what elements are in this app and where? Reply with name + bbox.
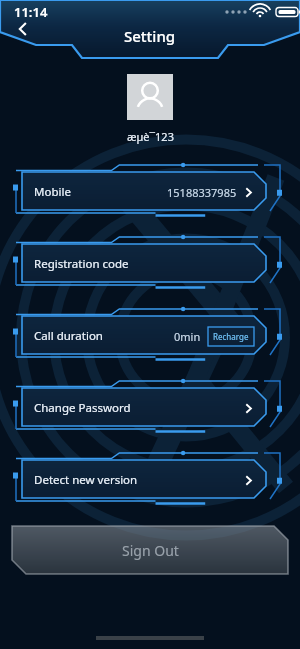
staticText: 0min xyxy=(174,329,201,344)
staticText: Change Password xyxy=(34,400,131,416)
staticText: Registration code xyxy=(34,256,129,272)
staticText: Mobile xyxy=(34,184,71,200)
button[interactable]: Registration code xyxy=(12,236,288,292)
staticText: Call duration xyxy=(34,328,103,344)
other: Open xyxy=(243,403,254,414)
other: Open xyxy=(243,475,254,486)
staticText: Sign Out xyxy=(122,541,179,560)
other: Open xyxy=(243,187,254,198)
button[interactable]: Mobile xyxy=(12,164,288,220)
staticText: Setting xyxy=(124,26,176,46)
staticText: Detect new version xyxy=(34,472,138,488)
button[interactable]: Avatar xyxy=(127,74,173,120)
button[interactable]: Recharge xyxy=(208,327,254,346)
button[interactable]: Detect new version xyxy=(12,452,288,508)
button[interactable]: Change Password xyxy=(12,380,288,436)
staticText: 15188337985 xyxy=(167,185,237,200)
staticText: 11:14 xyxy=(14,3,48,21)
button[interactable]: Back xyxy=(6,12,40,46)
button[interactable]: Call duration xyxy=(12,308,288,364)
button[interactable]: Sign Out xyxy=(12,526,288,574)
staticText: æµè¯123 xyxy=(127,129,174,144)
staticText: Recharge xyxy=(213,331,249,342)
